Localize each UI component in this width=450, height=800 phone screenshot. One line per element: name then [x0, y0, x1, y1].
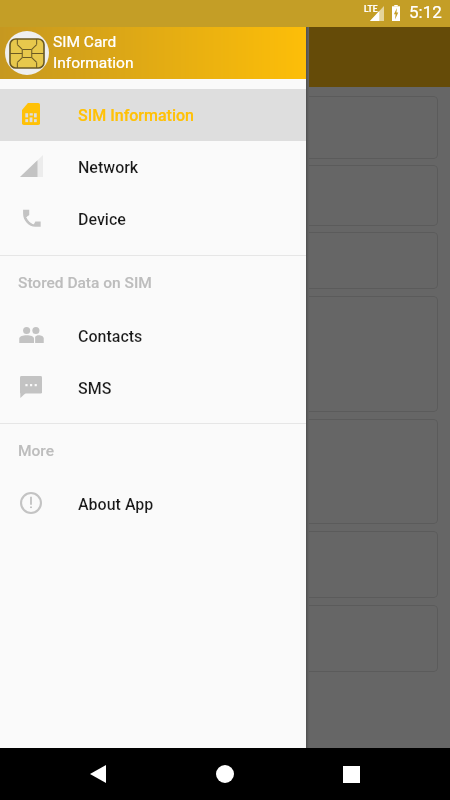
button[interactable]: Network	[0, 141, 306, 193]
staticText: SIM Information	[78, 106, 194, 125]
staticText: 5:12	[409, 2, 442, 22]
button[interactable]: About App	[0, 478, 306, 530]
staticText: Device	[78, 210, 126, 229]
staticText: SIM Card	[53, 33, 117, 51]
staticText: Stored Data on SIM	[18, 274, 152, 292]
button[interactable]: Contacts	[0, 310, 306, 362]
staticText: Network	[78, 158, 139, 177]
button[interactable]: SIM Information	[0, 89, 306, 141]
button[interactable]: SMS	[0, 362, 306, 414]
button[interactable]: Back	[58, 748, 138, 800]
staticText: More	[18, 442, 54, 460]
button[interactable]: Recent apps	[311, 748, 391, 800]
staticText: SMS	[78, 379, 112, 398]
staticText: LTE	[364, 4, 378, 14]
staticText: About App	[78, 495, 154, 514]
button[interactable]: Device	[0, 193, 306, 245]
staticText: Contacts	[78, 327, 143, 346]
button[interactable]: Home	[185, 748, 265, 800]
staticText: Information	[53, 54, 134, 72]
